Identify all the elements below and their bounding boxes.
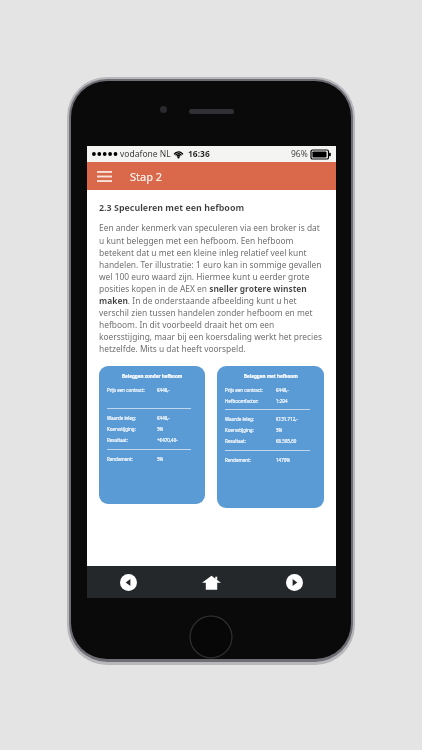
staticText: Waarde inleg: xyxy=(107,415,137,421)
button[interactable]: Home xyxy=(170,566,253,598)
staticText: Rendement: xyxy=(225,457,251,463)
staticText: Resultaat: xyxy=(225,438,246,444)
staticText: Beleggen zonder hefboom xyxy=(122,373,183,379)
button[interactable]: Menu xyxy=(87,162,121,190)
staticText: Koersstijging: xyxy=(225,427,254,433)
staticText: Waarde inleg: xyxy=(225,416,255,422)
button[interactable]: Beleggen zonder hefboom xyxy=(99,366,205,504)
staticText: 16:36 xyxy=(188,148,210,160)
staticText: €448,- xyxy=(276,387,289,393)
staticText: Een ander kenmerk van speculeren via een… xyxy=(99,222,324,354)
staticText: Hefboomfactor: xyxy=(225,398,259,404)
staticText: 5% xyxy=(157,456,164,462)
staticText: €131.712,- xyxy=(276,416,298,422)
staticText: Rendement: xyxy=(107,456,133,462)
staticText: Koersstijging: xyxy=(107,426,136,432)
staticText: Beleggen met hefboom xyxy=(244,373,298,379)
staticText: 96% xyxy=(291,148,308,160)
staticText: 1:294 xyxy=(276,398,288,404)
staticText: €448,- xyxy=(157,415,170,421)
staticText: Resultaat: xyxy=(107,437,128,443)
staticText: 5% xyxy=(157,426,164,432)
staticText: vodafone NL xyxy=(120,148,171,160)
staticText: +€470,40- xyxy=(157,437,178,443)
button[interactable]: Previous xyxy=(87,566,170,598)
staticText: 5% xyxy=(276,427,283,433)
button[interactable]: Beleggen met hefboom xyxy=(217,366,324,508)
staticText: €448,- xyxy=(157,387,170,393)
staticText: Prijs een contract: xyxy=(107,387,145,393)
staticText: Stap 2 xyxy=(130,169,163,184)
button[interactable]: Next xyxy=(253,566,336,598)
staticText: Prijs een contract: xyxy=(225,387,263,393)
staticText: 2.3 Speculeren met een hefboom xyxy=(99,201,245,213)
staticText: 1470% xyxy=(276,457,291,463)
staticText: €6.585,60 xyxy=(276,438,297,444)
